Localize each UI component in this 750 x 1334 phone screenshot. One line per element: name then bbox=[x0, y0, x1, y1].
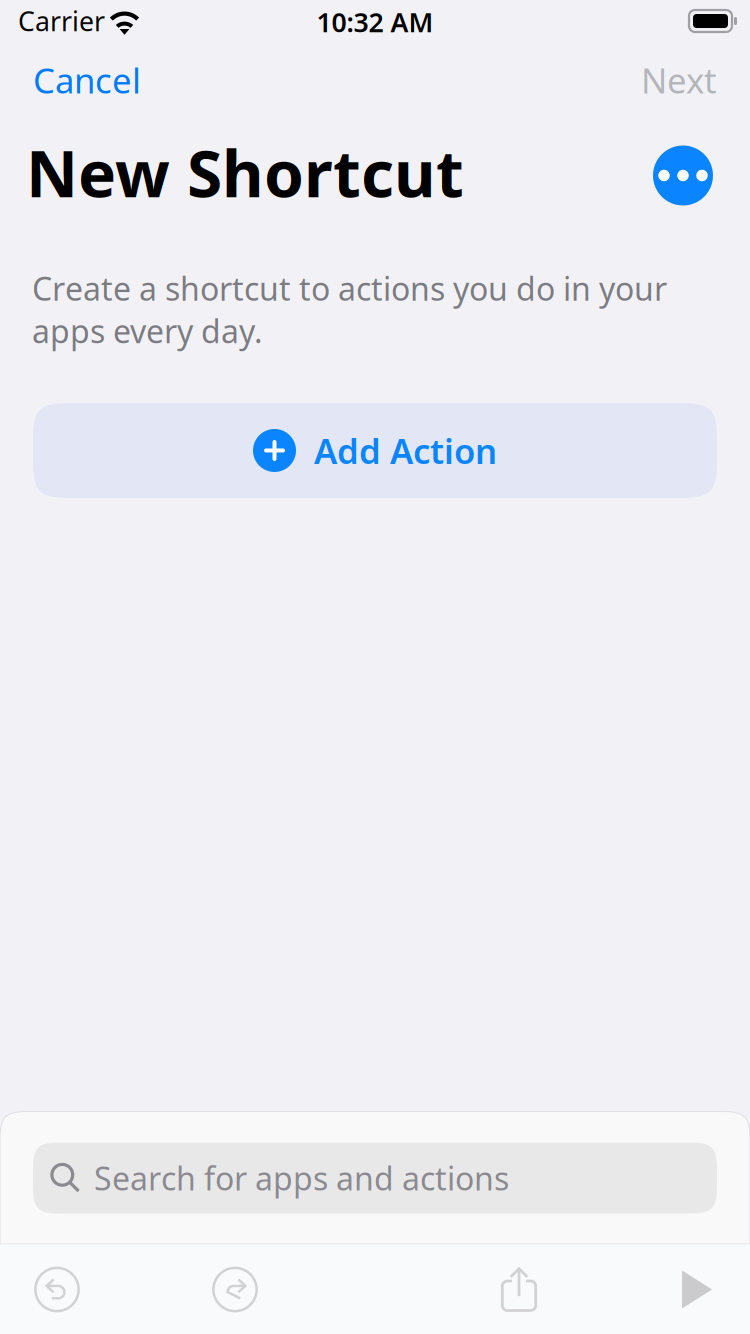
button[interactable]: Add Action bbox=[33, 403, 717, 498]
button[interactable]: Share bbox=[474, 1244, 564, 1334]
button[interactable]: Next bbox=[635, 47, 723, 113]
button[interactable]: Search for apps and actions bbox=[33, 1142, 717, 1213]
staticText: Create a shortcut to actions you do in y… bbox=[32, 267, 667, 352]
button[interactable]: Undo bbox=[12, 1244, 102, 1334]
button[interactable]: Cancel bbox=[27, 47, 147, 113]
staticText: Add Action bbox=[314, 427, 497, 473]
button[interactable]: Run shortcut bbox=[652, 1244, 742, 1334]
staticText: Search for apps and actions bbox=[94, 1157, 509, 1199]
staticText: Next bbox=[641, 57, 717, 103]
staticText: 10:32 AM bbox=[316, 4, 433, 40]
staticText: Cancel bbox=[33, 57, 141, 103]
staticText: New Shortcut bbox=[26, 130, 464, 215]
staticText: Carrier bbox=[18, 3, 105, 39]
button[interactable]: More options bbox=[653, 145, 713, 205]
button[interactable]: Redo bbox=[190, 1244, 280, 1334]
